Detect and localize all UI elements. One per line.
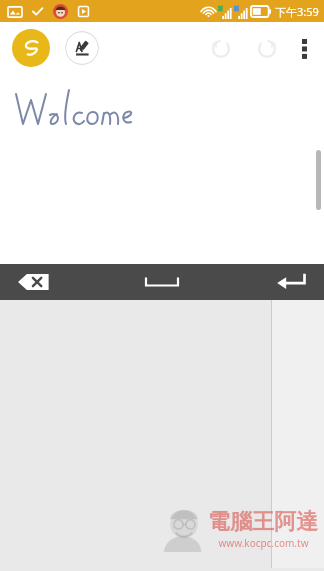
staticText: 下午3:59 <box>275 4 319 19</box>
button[interactable]: Backspace <box>16 271 50 293</box>
button[interactable]: Space <box>142 271 182 293</box>
button[interactable] <box>0 74 324 264</box>
staticText: www.kocpc.com.tw <box>218 536 309 550</box>
button[interactable]: Pen tool <box>12 29 50 67</box>
button[interactable]: Highlighter tool <box>65 31 99 65</box>
button[interactable]: More options <box>294 33 314 63</box>
button[interactable]: Redo <box>252 33 282 63</box>
staticText: 電腦王阿達 <box>208 508 318 536</box>
button[interactable]: Undo <box>206 33 236 63</box>
button[interactable]: Enter <box>276 271 306 293</box>
